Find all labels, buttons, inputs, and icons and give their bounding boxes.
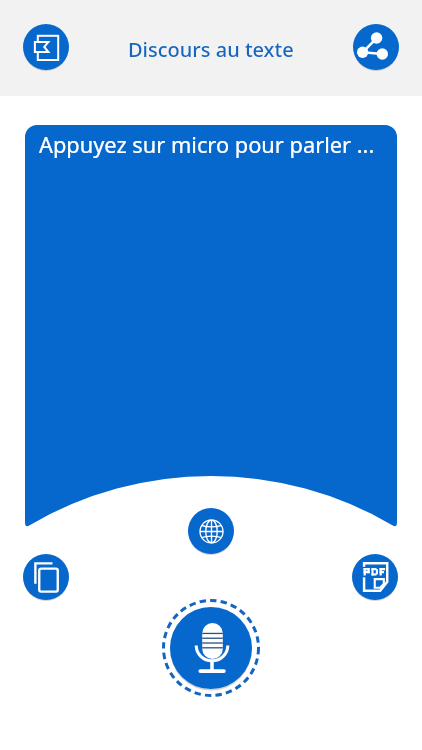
staticText: Appuyez sur micro pour parler ... xyxy=(39,130,375,160)
button[interactable]: Export PDF xyxy=(352,554,398,600)
button[interactable]: Microphone xyxy=(161,598,261,698)
button[interactable]: Copy xyxy=(23,554,69,600)
button[interactable]: Language xyxy=(188,508,234,554)
button[interactable]: Exit xyxy=(23,24,69,70)
staticText: Discours au texte xyxy=(128,36,294,63)
button[interactable]: Share xyxy=(353,24,399,70)
